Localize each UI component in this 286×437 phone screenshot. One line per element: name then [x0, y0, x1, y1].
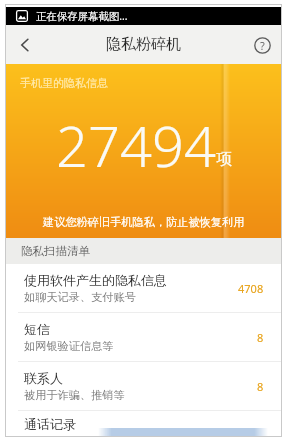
staticText: 隐私扫描清单	[21, 244, 90, 258]
staticText: 如聊天记录、支付账号	[24, 290, 136, 304]
button[interactable]: 通话记录	[6, 411, 281, 436]
button[interactable]: 联系人	[6, 362, 281, 410]
button[interactable]: 短信	[6, 313, 281, 361]
staticText: 短信	[24, 321, 50, 337]
staticText: 4708	[238, 281, 264, 296]
staticText: 通话记录	[24, 416, 76, 432]
staticText: 27494	[56, 107, 216, 183]
button[interactable]: Help	[243, 26, 281, 64]
staticText: 联系人	[24, 370, 63, 386]
staticText: 隐私粉碎机	[106, 35, 181, 54]
staticText: 如网银验证信息等	[24, 339, 114, 353]
staticText: 使用软件产生的隐私信息	[24, 272, 167, 288]
staticText: 项	[216, 149, 232, 169]
staticText: 8	[257, 379, 264, 394]
staticText: 建议您粉碎旧手机隐私，防止被恢复利用	[43, 215, 245, 229]
staticText: ?	[260, 38, 265, 53]
button[interactable]: 使用软件产生的隐私信息	[6, 264, 281, 312]
staticText: 正在保存屏幕截图...	[36, 9, 128, 23]
staticText: 8	[257, 330, 264, 345]
staticText: 手机里的隐私信息	[20, 76, 108, 90]
staticText: 被用于诈骗、推销等	[24, 388, 125, 402]
button[interactable]: Back	[6, 26, 44, 64]
